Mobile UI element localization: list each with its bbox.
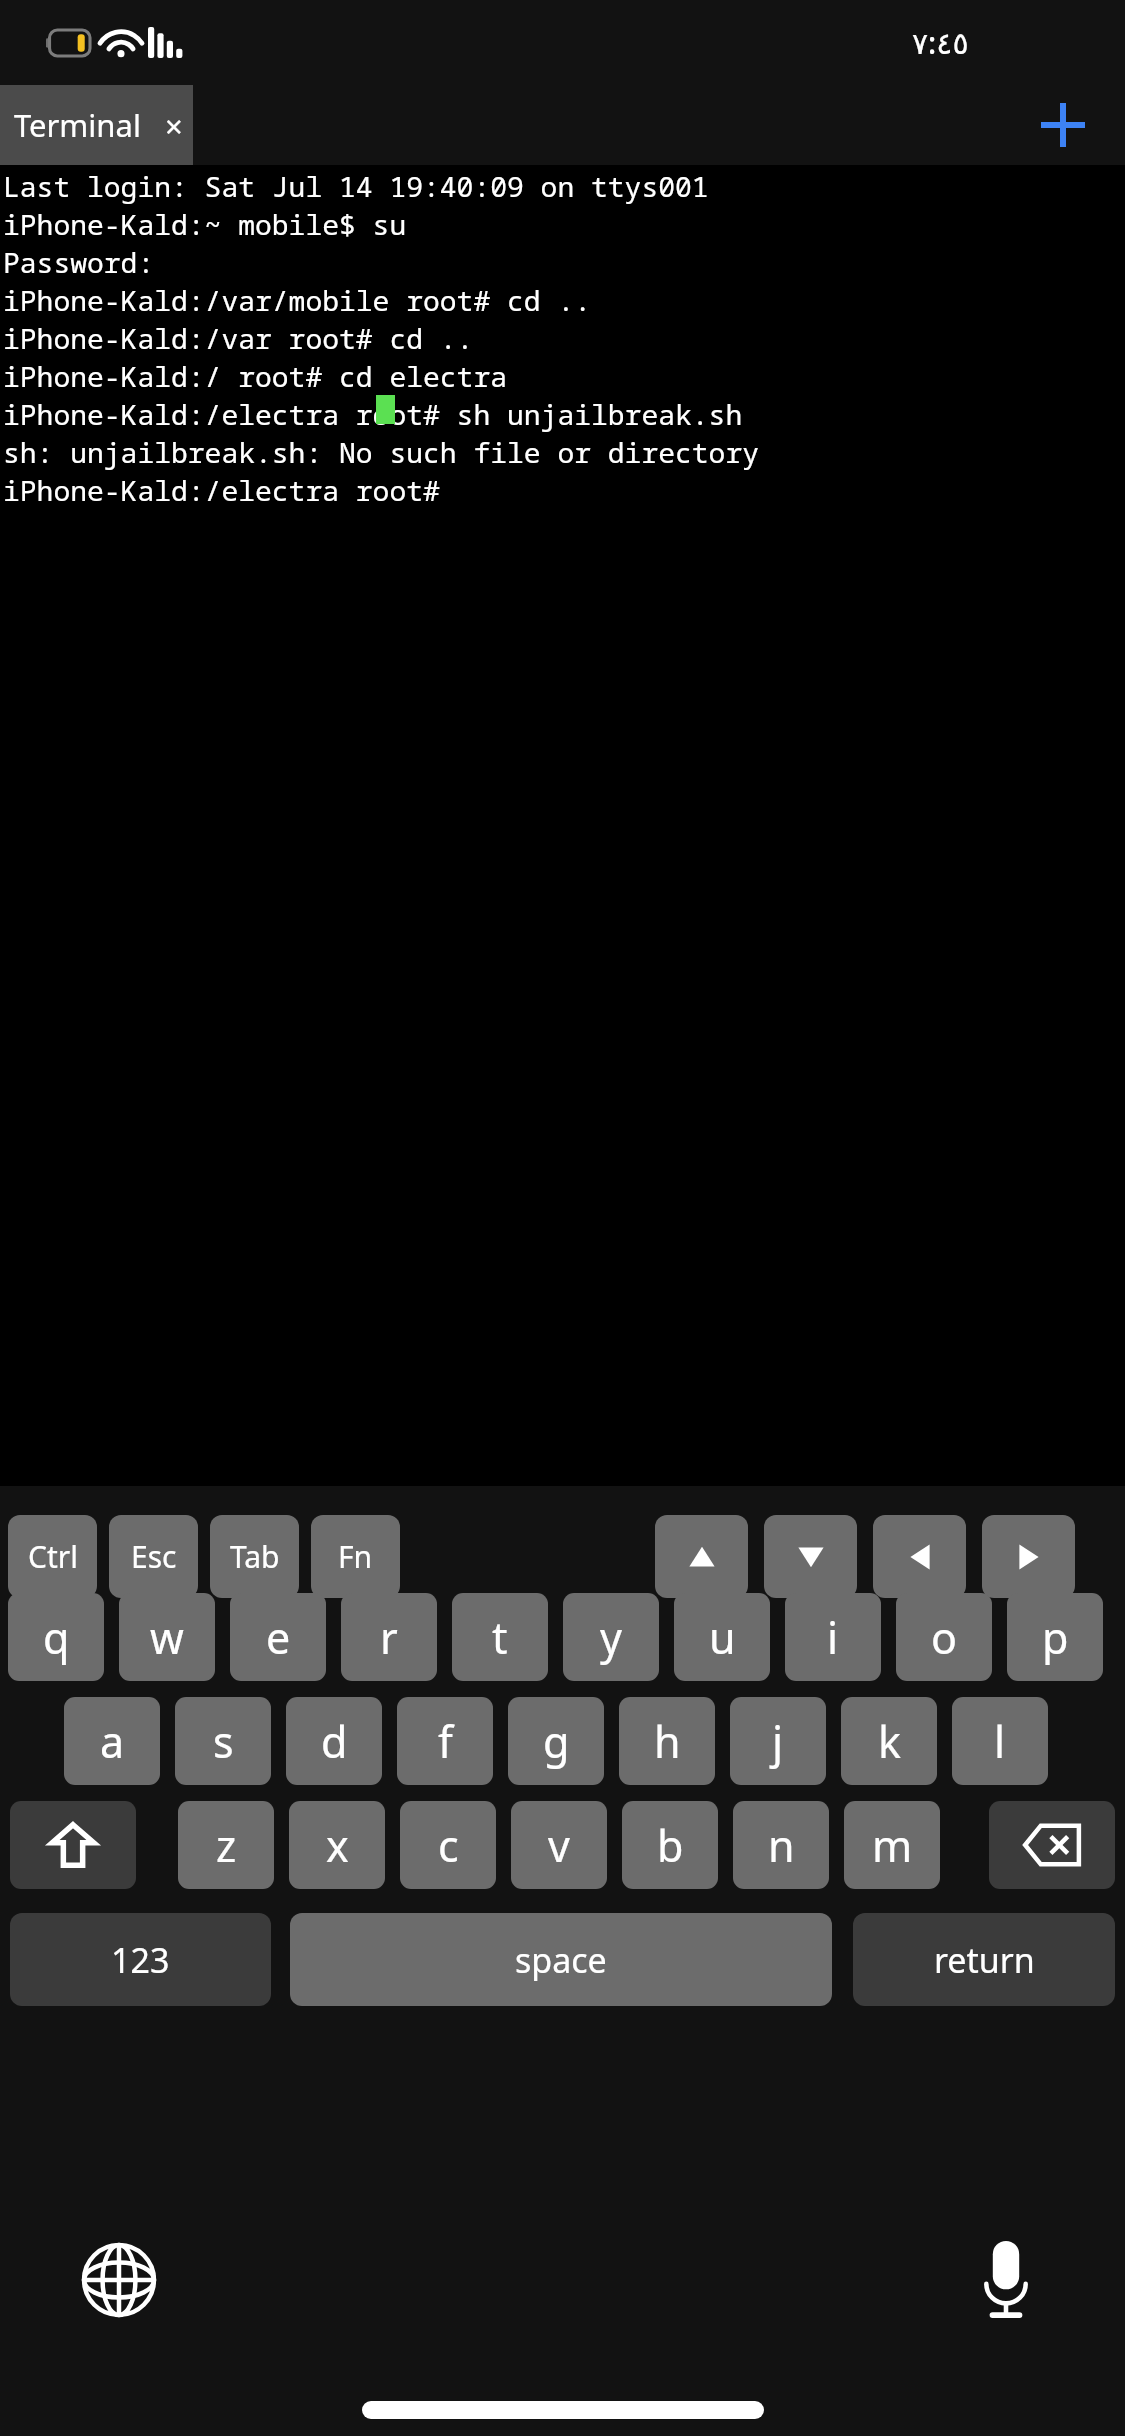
staticText: Ctrl xyxy=(28,1536,78,1577)
staticText: Fn xyxy=(338,1536,373,1577)
button[interactable]: 123 xyxy=(10,1913,271,2006)
button[interactable]: Fn xyxy=(311,1515,400,1598)
button[interactable]: e xyxy=(230,1593,326,1681)
staticText: h xyxy=(654,1712,681,1771)
button[interactable]: space xyxy=(290,1913,832,2006)
button[interactable]: k xyxy=(841,1697,937,1785)
button[interactable]: Esc xyxy=(109,1515,198,1598)
staticText: p xyxy=(1042,1608,1069,1667)
staticText: f xyxy=(438,1712,453,1771)
staticText: m xyxy=(872,1816,913,1875)
staticText: g xyxy=(543,1712,570,1771)
staticText: q xyxy=(43,1608,70,1667)
staticText: n xyxy=(768,1816,795,1875)
staticText: Tab xyxy=(230,1536,280,1577)
button[interactable]: t xyxy=(452,1593,548,1681)
button[interactable]: j xyxy=(730,1697,826,1785)
button[interactable]: y xyxy=(563,1593,659,1681)
staticText: o xyxy=(931,1608,958,1667)
staticText: u xyxy=(709,1608,736,1667)
button[interactable]: Ctrl xyxy=(8,1515,97,1598)
button[interactable]: f xyxy=(397,1697,493,1785)
button[interactable]: z xyxy=(178,1801,274,1889)
staticText: d xyxy=(321,1712,348,1771)
button[interactable]: w xyxy=(119,1593,215,1681)
button[interactable]: g xyxy=(508,1697,604,1785)
button[interactable]: v xyxy=(511,1801,607,1889)
staticText: e xyxy=(266,1608,291,1667)
staticText: z xyxy=(216,1816,237,1875)
button[interactable]: Arrow left xyxy=(873,1515,966,1598)
staticText: Last login: Sat Jul 14 19:40:09 on ttys0… xyxy=(3,167,709,205)
button[interactable]: Dictate xyxy=(963,2237,1049,2323)
staticText: x xyxy=(326,1816,349,1875)
staticText: space xyxy=(515,1937,607,1983)
button[interactable]: d xyxy=(286,1697,382,1785)
button[interactable]: b xyxy=(622,1801,718,1889)
button[interactable]: i xyxy=(785,1593,881,1681)
staticText: Password: xyxy=(3,243,155,281)
staticText: ٧:٤٥ xyxy=(912,22,969,63)
staticText: iPhone-Kald:/ root# cd electra xyxy=(3,357,508,395)
staticText: iPhone-Kald:/var root# cd .. xyxy=(3,319,474,357)
button[interactable]: h xyxy=(619,1697,715,1785)
staticText: r xyxy=(380,1608,398,1667)
button[interactable]: l xyxy=(952,1697,1048,1785)
staticText: Terminal xyxy=(14,104,141,146)
button[interactable]: Close tab xyxy=(155,105,193,145)
button[interactable]: Backspace xyxy=(989,1801,1115,1889)
button[interactable]: x xyxy=(289,1801,385,1889)
button[interactable]: Arrow right xyxy=(982,1515,1075,1598)
button[interactable]: p xyxy=(1007,1593,1103,1681)
button[interactable]: Arrow up xyxy=(655,1515,748,1598)
button[interactable]: Tab xyxy=(210,1515,299,1598)
button[interactable]: return xyxy=(853,1913,1115,2006)
button[interactable]: c xyxy=(400,1801,496,1889)
staticText: a xyxy=(100,1712,125,1771)
button[interactable]: o xyxy=(896,1593,992,1681)
button[interactable]: u xyxy=(674,1593,770,1681)
staticText: k xyxy=(878,1712,901,1771)
button[interactable]: n xyxy=(733,1801,829,1889)
button[interactable]: a xyxy=(64,1697,160,1785)
staticText: t xyxy=(492,1608,508,1667)
staticText: × xyxy=(165,105,183,145)
button[interactable]: Arrow down xyxy=(764,1515,857,1598)
staticText: iPhone-Kald:~ mobile$ su xyxy=(3,205,407,243)
button[interactable]: Change keyboard xyxy=(76,2237,162,2323)
button[interactable]: Terminal xyxy=(0,85,193,165)
staticText: iPhone-Kald:/var/mobile root# cd .. xyxy=(3,281,592,319)
button[interactable]: s xyxy=(175,1697,271,1785)
button[interactable]: q xyxy=(8,1593,104,1681)
button[interactable]: m xyxy=(844,1801,940,1889)
staticText: y xyxy=(600,1608,622,1667)
staticText: i xyxy=(827,1608,839,1667)
staticText: iPhone-Kald:/electra root# xyxy=(3,471,440,509)
staticText: s xyxy=(213,1712,234,1771)
button[interactable]: r xyxy=(341,1593,437,1681)
staticText: return xyxy=(934,1937,1035,1983)
staticText: c xyxy=(438,1816,459,1875)
staticText: j xyxy=(772,1712,784,1771)
staticText: sh: unjailbreak.sh: No such file or dire… xyxy=(3,433,760,471)
staticText: Esc xyxy=(131,1536,177,1577)
staticText: l xyxy=(994,1712,1006,1771)
button[interactable]: Shift xyxy=(10,1801,136,1889)
staticText: v xyxy=(548,1816,570,1875)
staticText: b xyxy=(657,1816,684,1875)
staticText: iPhone-Kald:/electra root# sh unjailbrea… xyxy=(3,395,743,433)
button[interactable]: New tab xyxy=(1030,92,1096,158)
staticText: 123 xyxy=(111,1937,170,1983)
staticText: w xyxy=(150,1608,184,1667)
